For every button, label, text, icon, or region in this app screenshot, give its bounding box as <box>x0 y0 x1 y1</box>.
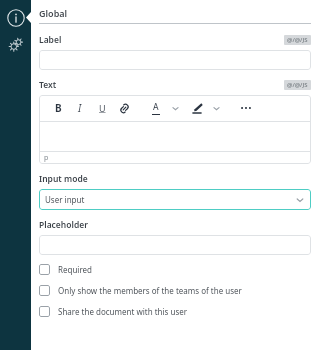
button[interactable]: Insert link <box>115 99 133 117</box>
button[interactable]: Text color options <box>166 99 184 117</box>
button[interactable]: Italic <box>71 99 89 117</box>
button[interactable]: Only show the members of the teams of th… <box>39 282 311 299</box>
staticText: Required <box>58 264 92 275</box>
staticText: Placeholder <box>39 219 88 231</box>
button[interactable]: Highlight options <box>207 99 225 117</box>
button[interactable]: Underline <box>93 99 111 117</box>
staticText: @/@/JS <box>287 36 308 44</box>
button[interactable]: Text color <box>147 99 165 117</box>
button[interactable]: @/@/JS <box>284 80 311 90</box>
staticText: Input mode <box>39 173 88 185</box>
button[interactable] <box>39 235 311 255</box>
staticText: I <box>78 101 82 115</box>
button[interactable]: Info <box>5 7 26 28</box>
button[interactable]: Settings <box>6 34 26 54</box>
button[interactable]: @/@/JS <box>284 35 311 45</box>
staticText: Share the document with this user <box>58 306 188 317</box>
button[interactable]: Highlight <box>188 99 206 117</box>
staticText: U <box>99 102 106 114</box>
button[interactable]: Share the document with this user <box>39 303 311 320</box>
button[interactable]: User input <box>39 189 311 210</box>
staticText: p <box>44 153 49 163</box>
button[interactable]: Bold <box>49 99 67 117</box>
button[interactable]: Required <box>39 261 311 278</box>
staticText: Label <box>39 34 62 46</box>
staticText: Text <box>39 79 57 91</box>
staticText: Global <box>39 7 68 19</box>
staticText: User input <box>45 194 85 205</box>
staticText: Only show the members of the teams of th… <box>58 285 242 296</box>
button[interactable] <box>39 50 311 70</box>
button[interactable]: More options <box>237 99 255 117</box>
staticText: @/@/JS <box>287 81 308 89</box>
staticText: B <box>55 101 62 115</box>
staticText: A <box>153 101 159 113</box>
